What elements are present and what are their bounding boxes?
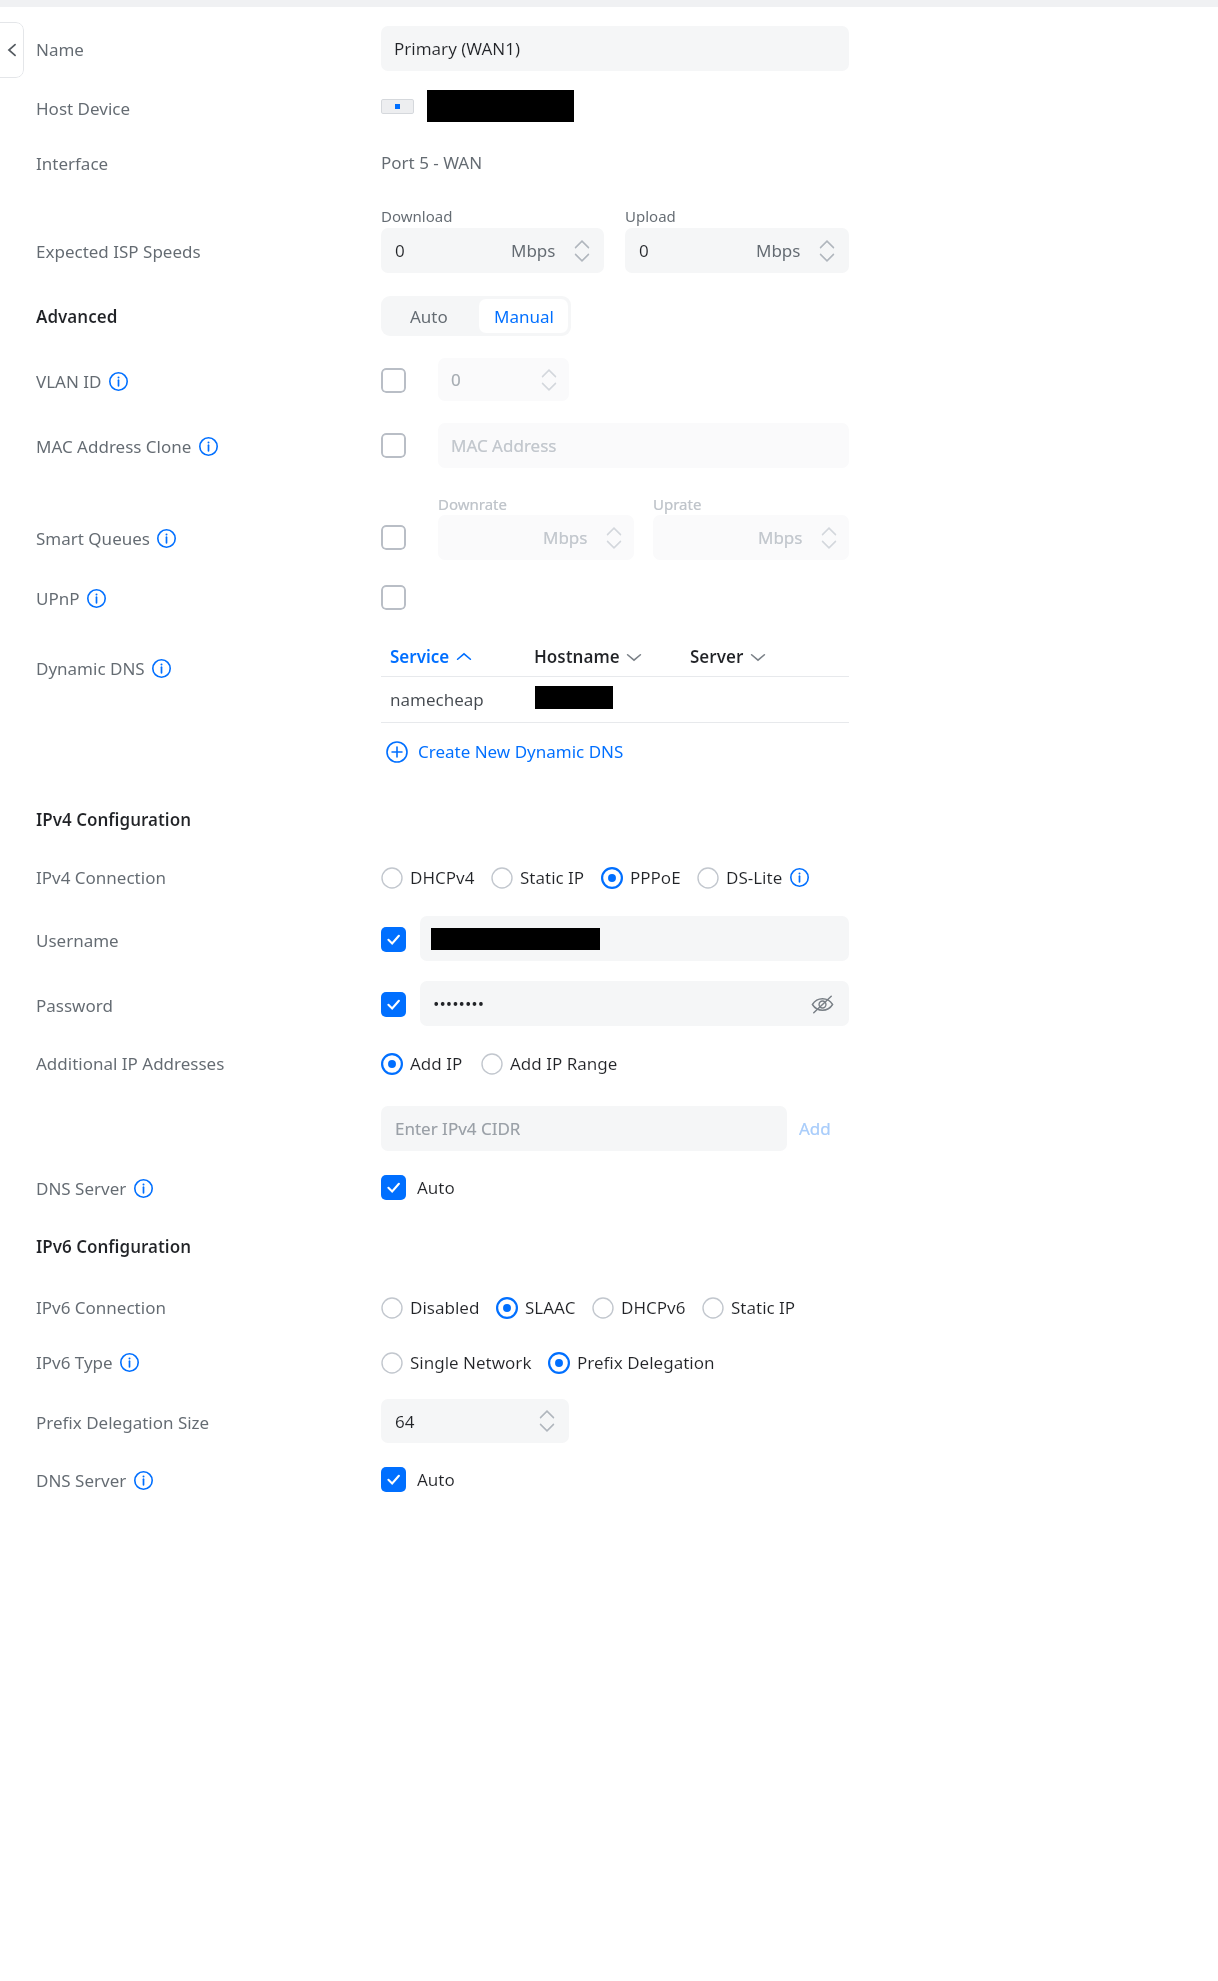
button[interactable]: SLAAC xyxy=(496,1296,576,1319)
staticText: •••••••• xyxy=(433,992,485,1015)
staticText: Dynamic DNS xyxy=(36,657,145,680)
staticText: IPv6 Connection xyxy=(36,1296,166,1319)
button[interactable]: Disabled xyxy=(381,1296,480,1319)
staticText: Disabled xyxy=(410,1296,480,1319)
button[interactable]: Add IP Range xyxy=(481,1052,618,1075)
staticText: Downrate xyxy=(438,494,507,514)
staticText: Password xyxy=(36,994,113,1017)
button[interactable]: DHCPv6 xyxy=(592,1296,686,1319)
button[interactable]: Auto xyxy=(381,296,476,336)
button[interactable]: Add xyxy=(799,1106,831,1151)
button[interactable]: DS-Lite xyxy=(697,866,809,889)
button[interactable] xyxy=(381,585,406,610)
other: Increment or decrement xyxy=(817,234,837,268)
staticText: Username xyxy=(36,929,119,952)
button[interactable]: 0 xyxy=(625,228,849,273)
staticText: PPPoE xyxy=(630,866,681,889)
button[interactable]: Single Network xyxy=(381,1351,532,1374)
button[interactable] xyxy=(381,1175,406,1200)
button[interactable] xyxy=(381,992,406,1017)
button[interactable]: Back xyxy=(0,22,24,78)
staticText: Primary (WAN1) xyxy=(394,37,521,60)
staticText: Single Network xyxy=(410,1351,532,1374)
staticText: IPv6 Type xyxy=(36,1351,113,1374)
button[interactable]: Server xyxy=(690,645,766,668)
staticText: 0 xyxy=(395,239,405,262)
other: Increment or decrement xyxy=(819,521,839,555)
staticText: DS-Lite xyxy=(726,866,783,889)
staticText: Name xyxy=(36,38,84,61)
staticText: SLAAC xyxy=(525,1296,576,1319)
button[interactable] xyxy=(381,433,406,458)
button[interactable]: PPPoE xyxy=(601,866,681,889)
staticText: DNS Server xyxy=(36,1469,127,1492)
button[interactable]: 0 xyxy=(381,228,604,273)
staticText: Additional IP Addresses xyxy=(36,1052,225,1075)
button[interactable]: Show password xyxy=(809,991,835,1017)
staticText: Prefix Delegation xyxy=(577,1351,715,1374)
staticText: DHCPv4 xyxy=(410,866,475,889)
button[interactable]: •••••••• xyxy=(420,981,849,1026)
staticText: Mbps xyxy=(511,239,556,262)
staticText: namecheap xyxy=(390,688,484,711)
staticText: Server xyxy=(690,645,744,668)
button[interactable]: Add IP xyxy=(381,1052,463,1075)
staticText: Enter IPv4 CIDR xyxy=(395,1117,521,1140)
button[interactable]: 64 xyxy=(381,1399,569,1443)
button[interactable] xyxy=(381,368,406,393)
staticText: Auto xyxy=(417,1468,455,1491)
staticText: Download xyxy=(381,206,453,226)
button[interactable]: Static IP xyxy=(702,1296,796,1319)
staticText: Interface xyxy=(36,152,109,175)
staticText: Auto xyxy=(410,305,448,328)
button[interactable]: Static IP xyxy=(491,866,585,889)
button[interactable]: 0 xyxy=(438,358,569,401)
staticText: Uprate xyxy=(653,494,702,514)
button[interactable] xyxy=(381,1467,406,1492)
staticText: MAC Address Clone xyxy=(36,435,192,458)
button[interactable]: MAC Address xyxy=(438,423,849,468)
other: Increment or decrement xyxy=(537,1404,557,1438)
button[interactable] xyxy=(420,916,849,961)
staticText: Static IP xyxy=(520,866,585,889)
staticText: Add xyxy=(799,1117,831,1140)
staticText: VLAN ID xyxy=(36,370,102,393)
staticText: IPv6 Configuration xyxy=(36,1235,192,1258)
button[interactable] xyxy=(381,927,406,952)
button[interactable]: Service xyxy=(390,645,472,668)
button[interactable]: Prefix Delegation xyxy=(548,1351,715,1374)
staticText: 0 xyxy=(639,239,649,262)
staticText: Expected ISP Speeds xyxy=(36,240,201,263)
staticText: IPv4 Configuration xyxy=(36,808,192,831)
button[interactable]: Mbps xyxy=(653,515,849,560)
staticText: Hostname xyxy=(534,645,620,668)
staticText: Manual xyxy=(494,305,554,328)
staticText: Mbps xyxy=(758,526,803,549)
staticText: Add IP Range xyxy=(510,1052,618,1075)
staticText: Auto xyxy=(417,1176,455,1199)
other: Increment or decrement xyxy=(572,234,592,268)
button[interactable]: Manual xyxy=(479,299,568,333)
staticText: DHCPv6 xyxy=(621,1296,686,1319)
staticText: Service xyxy=(390,645,450,668)
other: Increment or decrement xyxy=(604,521,624,555)
staticText: UPnP xyxy=(36,587,80,610)
staticText: Prefix Delegation Size xyxy=(36,1411,210,1434)
staticText: Mbps xyxy=(756,239,801,262)
button[interactable]: DHCPv4 xyxy=(381,866,475,889)
button[interactable]: Hostname xyxy=(534,645,642,668)
staticText: 0 xyxy=(451,368,461,391)
staticText: 64 xyxy=(395,1410,415,1433)
staticText: IPv4 Connection xyxy=(36,866,166,889)
staticText: MAC Address xyxy=(451,434,557,457)
other: Increment or decrement xyxy=(539,363,559,397)
staticText: Host Device xyxy=(36,97,131,120)
button[interactable]: Create New Dynamic DNS xyxy=(386,740,624,763)
button[interactable]: Enter IPv4 CIDR xyxy=(381,1106,787,1151)
button[interactable]: Primary (WAN1) xyxy=(381,26,849,71)
button[interactable]: Mbps xyxy=(438,515,634,560)
staticText: Mbps xyxy=(543,526,588,549)
button[interactable] xyxy=(381,525,406,550)
staticText: Add IP xyxy=(410,1052,463,1075)
staticText: Smart Queues xyxy=(36,527,150,550)
